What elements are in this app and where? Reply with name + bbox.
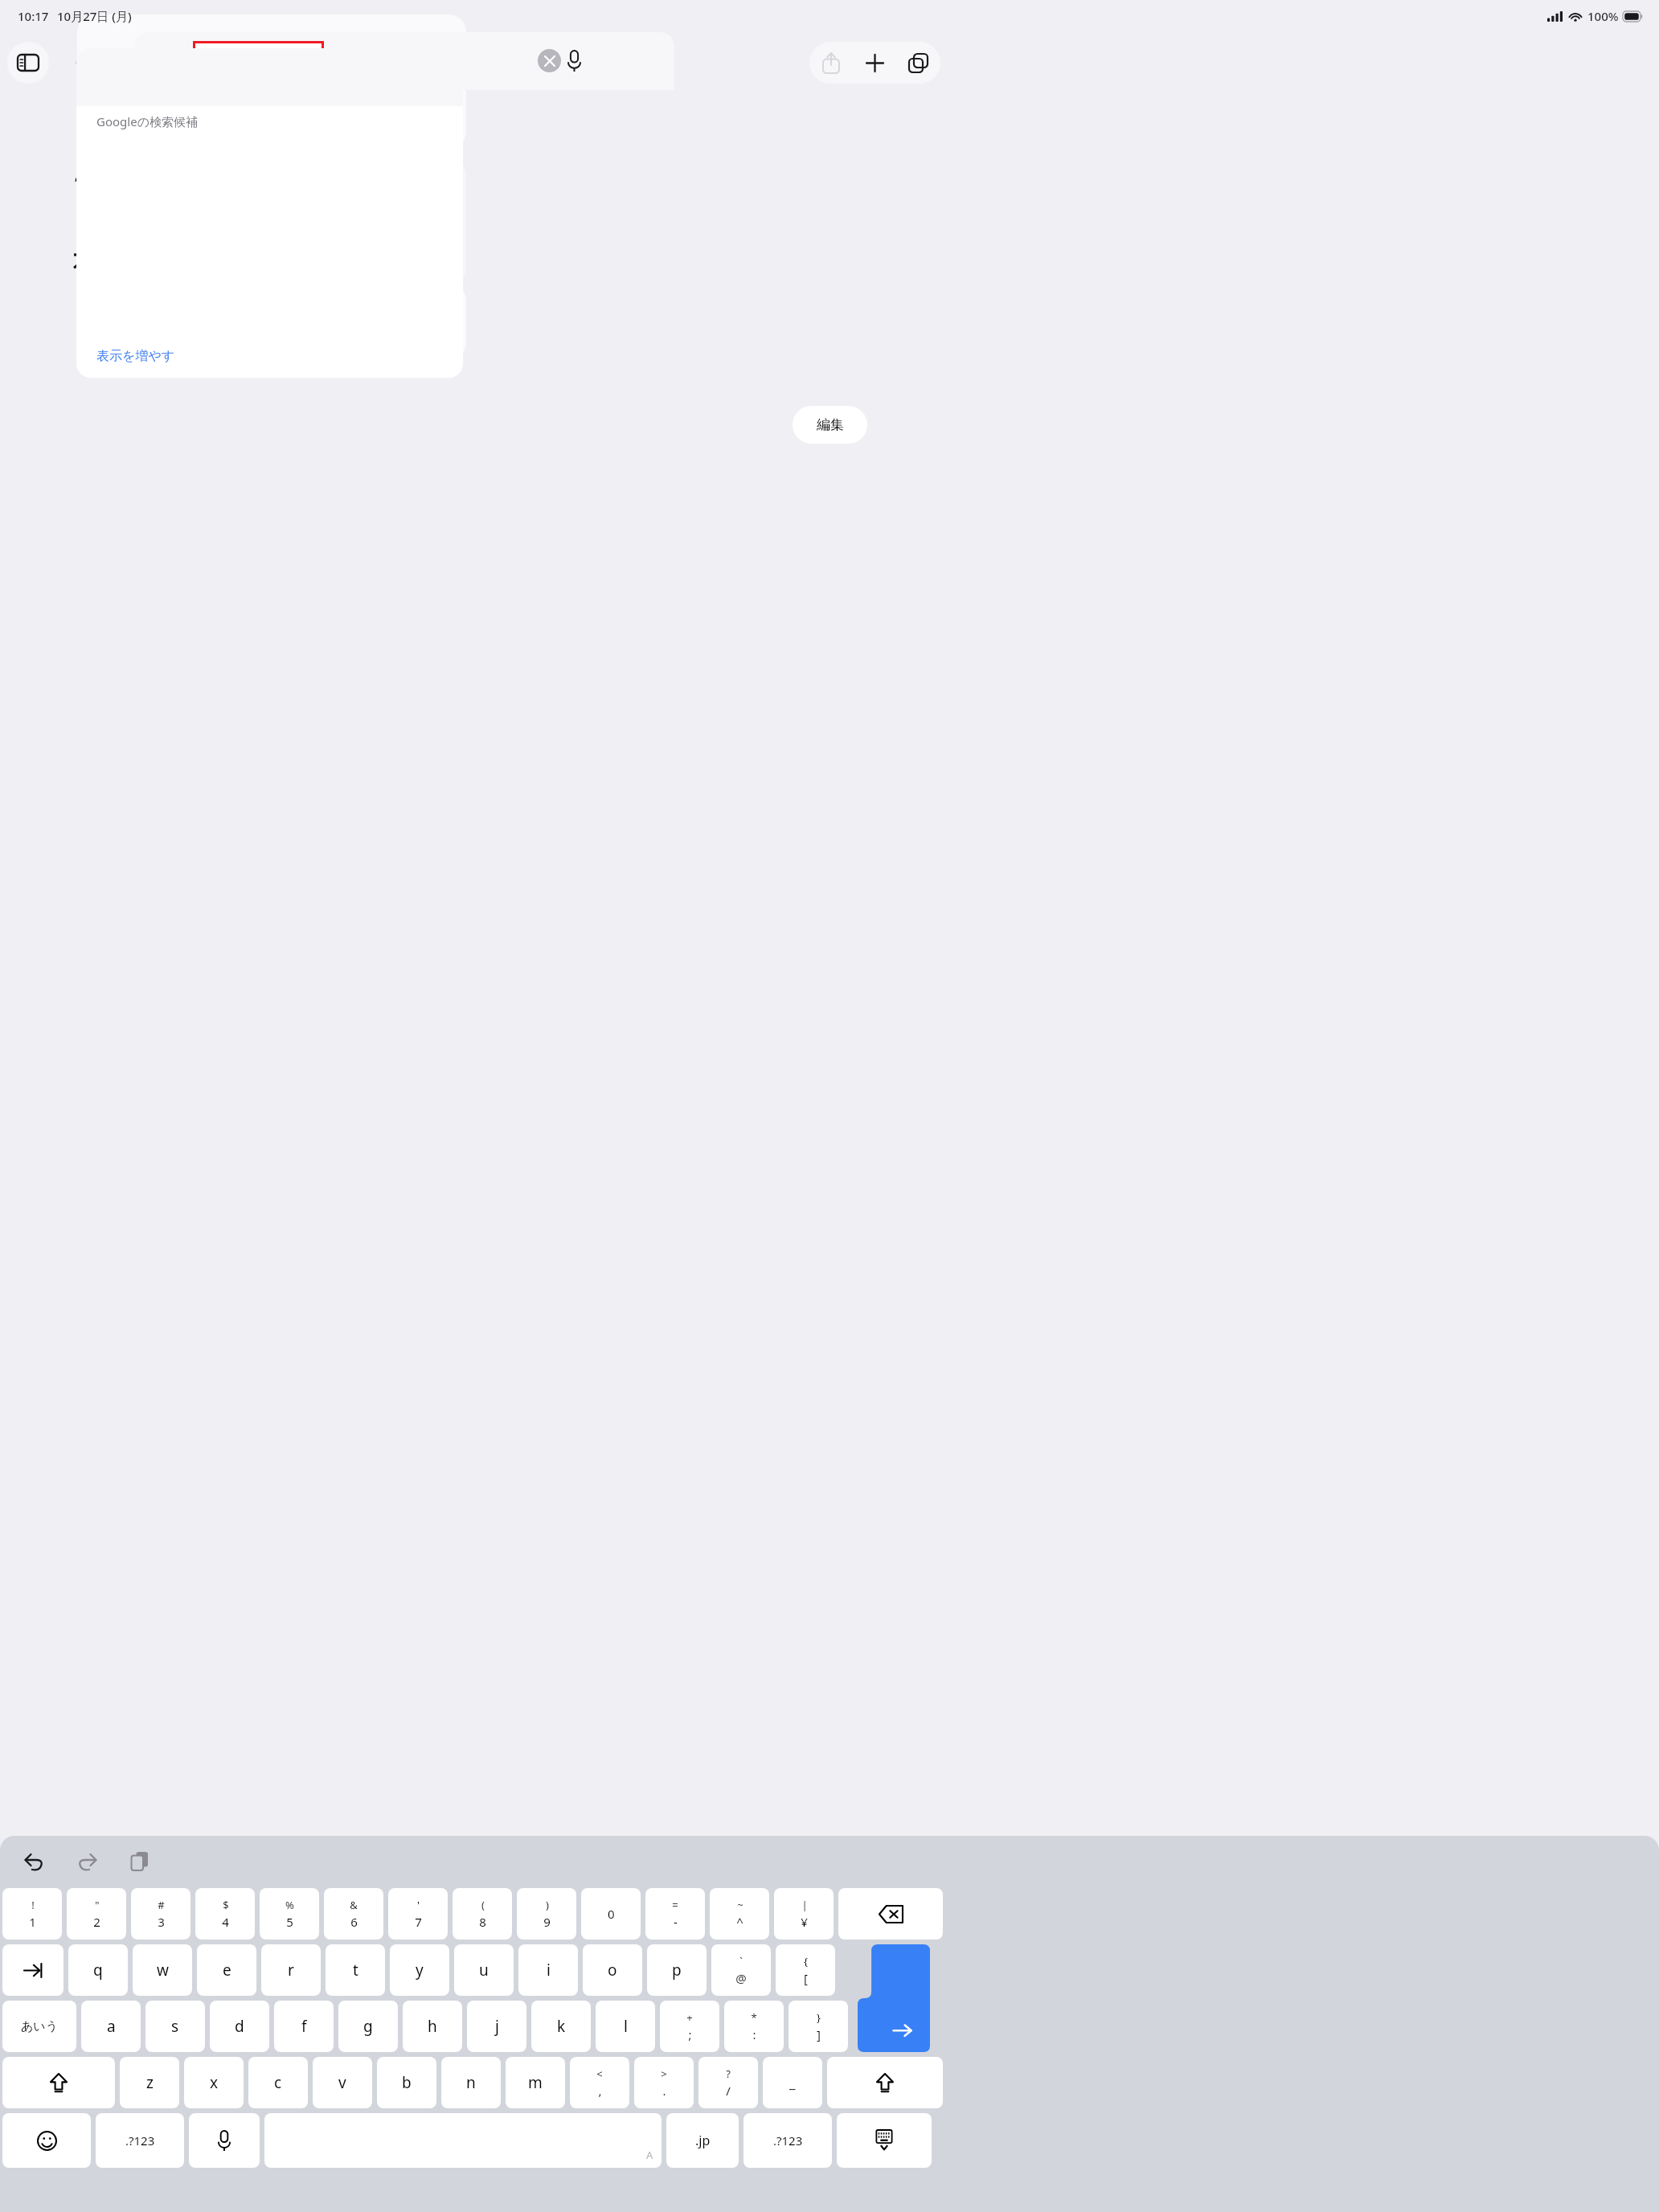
button[interactable]: # <box>131 1888 190 1940</box>
button[interactable]: + <box>660 2001 719 2052</box>
button[interactable]: ) <box>517 1888 576 1940</box>
button[interactable]: n <box>441 2057 501 2108</box>
button[interactable]: d <box>210 2001 269 2052</box>
button[interactable]: ( <box>453 1888 512 1940</box>
button[interactable]: | <box>774 1888 834 1940</box>
staticText: - <box>674 1914 678 1930</box>
button[interactable]: h <box>403 2001 462 2052</box>
button[interactable]: Dictation <box>189 2113 260 2168</box>
button[interactable]: 0 <box>581 1888 641 1940</box>
button[interactable]: あいう <box>2 2001 76 2052</box>
button[interactable]: b <box>377 2057 436 2108</box>
staticText: .?123 <box>125 2132 155 2149</box>
staticText: z <box>146 2072 154 2093</box>
button[interactable]: Paste <box>122 1843 158 1878</box>
button[interactable]: < <box>570 2057 629 2108</box>
staticText: i <box>547 1960 551 1981</box>
staticText: n <box>466 2072 476 2093</box>
staticText: t <box>353 1960 358 1981</box>
staticText: 編集 <box>817 416 844 433</box>
button[interactable]: Back <box>60 42 102 84</box>
button[interactable]: j <box>467 2001 526 2052</box>
button[interactable]: m <box>506 2057 565 2108</box>
button[interactable]: = <box>645 1888 705 1940</box>
button[interactable]: Tab <box>2 1944 63 1996</box>
button[interactable]: } <box>789 2001 848 2052</box>
button[interactable]: Voice search <box>553 40 595 82</box>
button[interactable]: " <box>67 1888 126 1940</box>
button[interactable]: f <box>274 2001 334 2052</box>
staticText: w <box>157 1960 169 1981</box>
button[interactable]: Redo <box>69 1843 104 1878</box>
button[interactable]: _ <box>763 2057 822 2108</box>
staticText: r <box>288 1960 294 1981</box>
button[interactable]: Space <box>264 2113 662 2168</box>
staticText: ? <box>726 2067 731 2081</box>
button[interactable]: Share <box>809 42 853 84</box>
button[interactable]: e <box>197 1944 256 1996</box>
staticText: p <box>672 1960 682 1981</box>
button[interactable]: y <box>390 1944 449 1996</box>
other: Backspace <box>879 1906 903 1923</box>
staticText: $ <box>223 1898 229 1912</box>
button[interactable]: { <box>776 1944 835 1996</box>
staticText: g <box>363 2016 373 2037</box>
button[interactable]: x <box>184 2057 244 2108</box>
button[interactable]: ! <box>2 1888 62 1940</box>
button[interactable]: 表示を増やす <box>76 334 463 378</box>
button[interactable]: Emoji <box>2 2113 91 2168</box>
button[interactable]: .jp <box>666 2113 739 2168</box>
button[interactable]: g <box>338 2001 398 2052</box>
button[interactable]: a <box>81 2001 141 2052</box>
button[interactable]: v <box>313 2057 372 2108</box>
button[interactable]: q <box>68 1944 128 1996</box>
button[interactable]: u <box>454 1944 514 1996</box>
staticText: 10月27日 (月) <box>57 8 132 24</box>
button[interactable]: p <box>647 1944 707 1996</box>
button[interactable]: Backspace <box>838 1888 943 1940</box>
staticText: u <box>479 1960 489 1981</box>
button[interactable]: New tab <box>853 42 896 84</box>
button[interactable]: Undo <box>16 1843 51 1878</box>
staticText: ( <box>481 1898 485 1912</box>
staticText: * <box>751 2010 757 2025</box>
button[interactable]: Shift <box>827 2057 943 2108</box>
button[interactable]: r <box>261 1944 321 1996</box>
button[interactable]: o <box>583 1944 642 1996</box>
button[interactable]: Clear <box>538 49 561 72</box>
button[interactable]: k <box>531 2001 591 2052</box>
button[interactable]: 編集 <box>793 406 867 444</box>
button[interactable]: s <box>145 2001 205 2052</box>
staticText: 1 <box>29 1914 36 1930</box>
button[interactable]: .?123 <box>96 2113 184 2168</box>
button[interactable]: https://linksmate.jp/apn/ios/ <box>195 43 322 79</box>
button[interactable]: z <box>120 2057 179 2108</box>
button[interactable]: & <box>324 1888 383 1940</box>
button[interactable]: Sidebar <box>7 42 49 84</box>
button[interactable]: ' <box>388 1888 448 1940</box>
button[interactable]: ? <box>698 2057 758 2108</box>
button[interactable]: % <box>260 1888 319 1940</box>
button[interactable]: i <box>518 1944 578 1996</box>
button[interactable]: .?123 <box>743 2113 832 2168</box>
staticText: f <box>301 2016 307 2037</box>
button[interactable]: t <box>326 1944 385 1996</box>
button[interactable]: ~ <box>710 1888 769 1940</box>
button[interactable]: l <box>596 2001 655 2052</box>
button[interactable]: w <box>133 1944 192 1996</box>
staticText: " <box>95 1898 100 1912</box>
other: Emoji <box>37 2131 57 2151</box>
staticText: & <box>350 1898 358 1912</box>
button[interactable]: Tabs <box>896 42 940 84</box>
staticText: .?123 <box>773 2132 803 2149</box>
button[interactable]: $ <box>195 1888 255 1940</box>
button[interactable]: * <box>724 2001 784 2052</box>
button[interactable]: ` <box>711 1944 771 1996</box>
button[interactable]: c <box>248 2057 308 2108</box>
button[interactable]: Hide keyboard <box>837 2113 932 2168</box>
staticText: = <box>672 1898 678 1912</box>
button[interactable]: > <box>634 2057 694 2108</box>
button[interactable]: Shift <box>2 2057 115 2108</box>
